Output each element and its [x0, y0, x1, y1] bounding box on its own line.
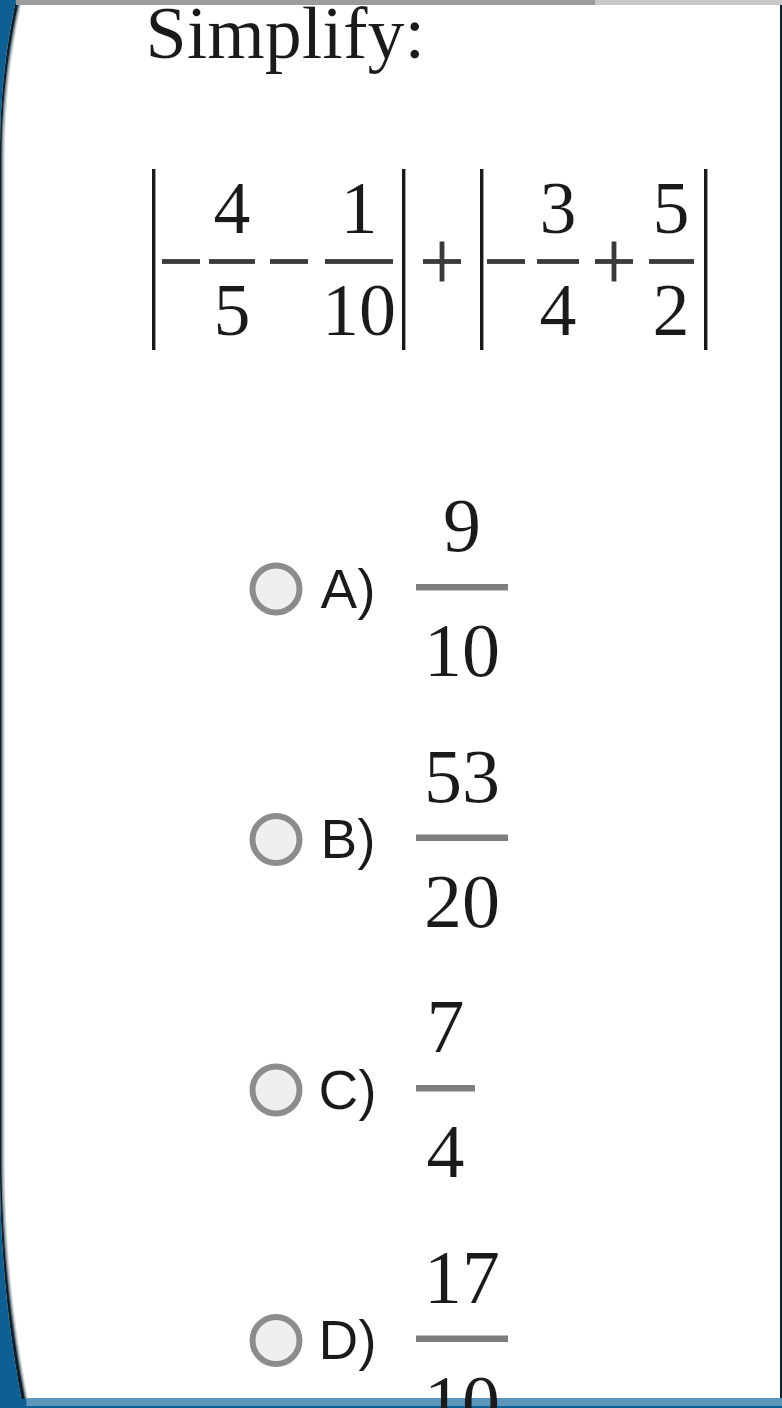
button[interactable]: Answer C) 7 over 4: [236, 980, 536, 1200]
button[interactable]: Answer B) 53 over 20: [236, 730, 536, 950]
button[interactable]: Answer A) 9 over 10: [236, 479, 536, 699]
button[interactable]: Answer D) 17 over 10: [236, 1231, 536, 1408]
